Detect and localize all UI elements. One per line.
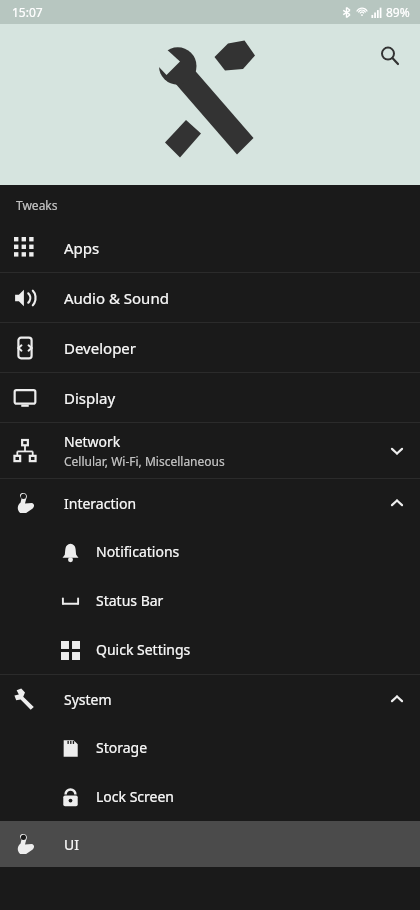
button[interactable]: Search	[368, 34, 412, 78]
staticText: UI	[64, 835, 79, 854]
staticText: Tweaks	[16, 197, 58, 213]
button[interactable]: System	[0, 675, 420, 723]
staticText: Apps	[64, 238, 100, 258]
staticText: Developer	[64, 338, 137, 358]
button[interactable]: Apps	[0, 223, 420, 272]
staticText: Cellular, Wi-Fi, Miscellaneous	[64, 453, 225, 469]
staticText: System	[64, 690, 112, 709]
button[interactable]: Lock Screen	[0, 772, 420, 821]
button[interactable]: Network	[0, 423, 420, 478]
staticText: Display	[64, 388, 116, 408]
staticText: Quick Settings	[96, 640, 191, 659]
staticText: Network	[64, 432, 121, 451]
button[interactable]: Notifications	[0, 527, 420, 576]
button[interactable]: Storage	[0, 723, 420, 772]
staticText: Audio & Sound	[64, 288, 169, 308]
staticText: Notifications	[96, 542, 180, 561]
button[interactable]: Audio & Sound	[0, 273, 420, 322]
staticText: Lock Screen	[96, 787, 174, 806]
button[interactable]: Status Bar	[0, 576, 420, 625]
staticText: Interaction	[64, 494, 137, 513]
button[interactable]: UI	[0, 821, 420, 867]
button[interactable]: Interaction	[0, 479, 420, 527]
staticText: Status Bar	[96, 591, 164, 610]
staticText: 15:07	[12, 4, 43, 20]
button[interactable]: Quick Settings	[0, 625, 420, 674]
staticText: Storage	[96, 738, 148, 757]
button[interactable]: Developer	[0, 323, 420, 372]
button[interactable]: Display	[0, 373, 420, 422]
staticText: 89%	[386, 4, 410, 20]
